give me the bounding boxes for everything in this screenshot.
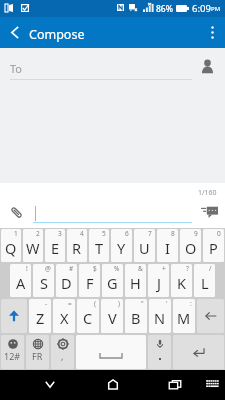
staticText: 6:09: [192, 2, 211, 15]
staticText: $: [93, 264, 97, 273]
staticText: G: [107, 273, 118, 293]
button[interactable]: 0: [203, 229, 224, 262]
staticText: B: [131, 308, 141, 328]
button[interactable]: /: [194, 264, 215, 297]
button[interactable]: +: [148, 264, 169, 297]
staticText: !: [26, 264, 28, 273]
staticText: N: [154, 308, 166, 328]
button[interactable]: Recent apps: [159, 370, 191, 400]
staticText: +: [162, 264, 166, 273]
button[interactable]: shift: [1, 299, 27, 333]
button[interactable]: &: [125, 264, 146, 297]
button[interactable]: ': [149, 299, 171, 333]
button[interactable]: More options: [200, 17, 225, 48]
staticText: To: [10, 61, 23, 76]
button[interactable]: =: [53, 299, 75, 333]
staticText: PM: [211, 5, 221, 13]
button[interactable]: ): [101, 299, 123, 333]
staticText: A: [16, 273, 26, 293]
staticText: %: [114, 264, 120, 273]
button[interactable]: $: [79, 264, 100, 297]
button[interactable]: Home: [97, 370, 129, 400]
staticText: /: [209, 264, 212, 273]
staticText: S: [40, 273, 48, 293]
button[interactable]: #: [56, 264, 77, 297]
staticText: ': [166, 299, 168, 308]
staticText: T: [95, 238, 104, 258]
staticText: L: [201, 273, 209, 293]
button[interactable]: emoji: [1, 335, 24, 369]
staticText: 5: [102, 229, 106, 238]
button[interactable]: settings: [51, 335, 74, 369]
staticText: 1: [14, 229, 18, 238]
button[interactable]: Choose contact: [195, 54, 219, 78]
button[interactable]: Navigate up: [0, 17, 29, 48]
staticText: J: [157, 273, 161, 293]
button[interactable]: 5: [89, 229, 109, 262]
staticText: K: [177, 273, 186, 293]
button[interactable]: mic: [148, 335, 171, 369]
staticText: ?: [186, 264, 189, 273]
staticText: R: [72, 238, 82, 258]
button[interactable]: :: [173, 299, 195, 333]
staticText: F: [86, 273, 94, 293]
button[interactable]: 7: [134, 229, 155, 262]
staticText: Q: [5, 238, 17, 258]
button[interactable]: lang: [26, 335, 49, 369]
staticText: #: [69, 264, 74, 273]
button[interactable]: enter: [173, 335, 224, 369]
staticText: X: [60, 308, 69, 328]
staticText: I: [165, 238, 170, 258]
button[interactable]: (: [77, 299, 99, 333]
staticText: 9: [194, 229, 198, 238]
button[interactable]: -: [29, 299, 51, 333]
staticText: Z: [36, 308, 45, 328]
staticText: O: [185, 238, 197, 258]
button[interactable]: !: [10, 264, 31, 297]
button[interactable]: Attach: [5, 201, 27, 223]
staticText: 2: [36, 229, 40, 238]
staticText: ): [118, 299, 120, 308]
staticText: 86%: [156, 3, 173, 15]
staticText: U: [139, 238, 150, 258]
staticText: D: [61, 273, 72, 293]
staticText: H: [130, 273, 141, 293]
staticText: 6: [125, 229, 129, 238]
button[interactable]: 2: [23, 229, 43, 262]
staticText: :: [190, 299, 192, 308]
button[interactable]: Space: [76, 335, 146, 369]
button[interactable]: @: [33, 264, 54, 297]
staticText: 12#: [4, 350, 21, 362]
staticText: 8: [171, 229, 175, 238]
staticText: =: [68, 299, 72, 308]
staticText: 3: [58, 229, 62, 238]
button[interactable]: 1: [1, 229, 21, 262]
staticText: Compose: [29, 26, 85, 43]
staticText: M: [177, 308, 191, 328]
button[interactable]: ": [125, 299, 147, 333]
staticText: 1/160: [198, 188, 217, 198]
button[interactable]: Send message: [197, 203, 221, 221]
button[interactable]: 3: [45, 229, 65, 262]
staticText: ": [141, 299, 144, 308]
button[interactable]: Hide keyboard: [200, 370, 225, 400]
staticText: @: [45, 264, 51, 273]
button[interactable]: 8: [157, 229, 178, 262]
staticText: C: [83, 308, 93, 328]
button[interactable]: Back: [34, 370, 66, 400]
staticText: V: [108, 308, 117, 328]
button[interactable]: 6: [111, 229, 132, 262]
staticText: W: [26, 238, 40, 258]
staticText: -: [45, 299, 48, 308]
staticText: Y: [117, 238, 126, 258]
staticText: E: [51, 238, 60, 258]
button[interactable]: 9: [180, 229, 201, 262]
staticText: P: [209, 238, 218, 258]
button[interactable]: %: [102, 264, 123, 297]
button[interactable]: ?: [171, 264, 192, 297]
button[interactable]: 4: [67, 229, 87, 262]
button[interactable]: back: [197, 299, 224, 333]
staticText: 0: [217, 229, 221, 238]
staticText: 7: [148, 229, 152, 238]
staticText: ,: [61, 350, 64, 362]
